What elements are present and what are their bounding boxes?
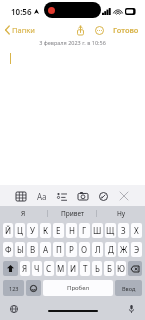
button[interactable]: В <box>27 242 38 257</box>
button[interactable]: И <box>68 261 78 276</box>
button[interactable]: Д <box>105 242 116 257</box>
button[interactable]: П <box>53 242 64 257</box>
staticText: Т <box>83 263 88 274</box>
staticText: Папки <box>12 25 35 35</box>
button[interactable]: Format text <box>35 188 49 204</box>
staticText: В <box>30 244 36 255</box>
button[interactable]: Ш <box>92 223 103 238</box>
button[interactable]: Й <box>3 223 13 238</box>
staticText: Э <box>134 244 140 255</box>
button[interactable]: Т <box>80 261 90 276</box>
staticText: Щ <box>106 225 115 236</box>
button[interactable]: Close keyboard <box>117 188 131 204</box>
staticText: Й <box>5 225 12 236</box>
button[interactable]: Share <box>74 24 86 36</box>
button[interactable]: Markup <box>96 188 110 204</box>
button[interactable]: Папки <box>0 23 39 37</box>
staticText: Я <box>21 209 26 218</box>
button[interactable]: Emoji <box>26 280 41 296</box>
staticText: Н <box>69 225 75 236</box>
button[interactable]: Camera <box>76 188 90 204</box>
staticText: 10:56 <box>11 6 32 17</box>
button[interactable]: Ц <box>15 223 25 238</box>
button[interactable]: Э <box>131 242 142 257</box>
button[interactable]: Table <box>14 188 28 204</box>
button[interactable]: Change keyboard <box>8 303 20 315</box>
button[interactable]: З <box>118 223 129 238</box>
staticText: 123 <box>9 285 19 292</box>
staticText: Привет <box>61 209 84 218</box>
button[interactable]: К <box>40 223 51 238</box>
staticText: Ч <box>34 263 40 274</box>
button[interactable]: Ю <box>116 261 126 276</box>
staticText: Г <box>82 225 87 236</box>
button[interactable]: 123 <box>3 280 24 296</box>
button[interactable]: Ну <box>97 206 145 221</box>
button[interactable]: Ф <box>3 242 13 257</box>
button[interactable]: Привет <box>48 206 96 221</box>
button[interactable]: О <box>79 242 90 257</box>
button[interactable]: Б <box>104 261 114 276</box>
button[interactable]: М <box>56 261 66 276</box>
button[interactable]: Ж <box>118 242 129 257</box>
button[interactable]: Ь <box>92 261 102 276</box>
button[interactable]: С <box>44 261 54 276</box>
staticText: Б <box>107 263 112 274</box>
button[interactable]: Е <box>53 223 64 238</box>
button[interactable]: У <box>27 223 38 238</box>
staticText: Ю <box>117 263 125 274</box>
staticText: Ш <box>93 225 102 236</box>
button[interactable]: Я <box>20 261 30 276</box>
staticText: Ввод <box>122 285 136 292</box>
staticText: 3 февраля 2023 г. в 10:56 <box>39 39 106 46</box>
staticText: Р <box>69 244 74 255</box>
staticText: Ц <box>17 225 23 236</box>
staticText: Ф <box>5 244 12 255</box>
button[interactable]: Shift <box>3 261 18 276</box>
staticText: Ну <box>117 209 126 218</box>
staticText: Я <box>22 263 28 274</box>
staticText: О <box>81 244 88 255</box>
staticText: Е <box>56 225 61 236</box>
button[interactable]: Checklist <box>55 188 69 204</box>
button[interactable]: А <box>40 242 51 257</box>
staticText: П <box>56 244 62 255</box>
button[interactable]: Backspace <box>128 261 142 276</box>
staticText: А <box>43 244 49 255</box>
button[interactable]: More <box>93 24 105 36</box>
staticText: З <box>121 225 126 236</box>
staticText: Пробел <box>67 284 90 292</box>
button[interactable]: Г <box>79 223 90 238</box>
button[interactable]: Ч <box>32 261 42 276</box>
staticText: Aa <box>37 191 47 202</box>
button[interactable]: Готово <box>112 23 140 37</box>
staticText: К <box>43 225 48 236</box>
staticText: Готово <box>113 25 139 35</box>
staticText: Ж <box>120 244 128 255</box>
button[interactable]: Dictation <box>125 303 137 315</box>
staticText: С <box>46 263 52 274</box>
button[interactable]: Ввод <box>115 280 142 296</box>
staticText: Ь <box>95 263 100 274</box>
staticText: Л <box>95 244 101 255</box>
button[interactable]: Х <box>131 223 142 238</box>
button[interactable]: Пробел <box>43 280 113 296</box>
button[interactable]: Р <box>66 242 77 257</box>
staticText: Х <box>134 225 139 236</box>
button[interactable]: Щ <box>105 223 116 238</box>
staticText: Д <box>108 244 114 255</box>
staticText: И <box>70 263 77 274</box>
button[interactable]: Л <box>92 242 103 257</box>
button[interactable]: Н <box>66 223 77 238</box>
staticText: М <box>57 263 65 274</box>
button[interactable]: Ы <box>15 242 25 257</box>
staticText: Ы <box>17 244 24 255</box>
button[interactable]: Я <box>0 206 47 221</box>
staticText: У <box>30 225 35 236</box>
